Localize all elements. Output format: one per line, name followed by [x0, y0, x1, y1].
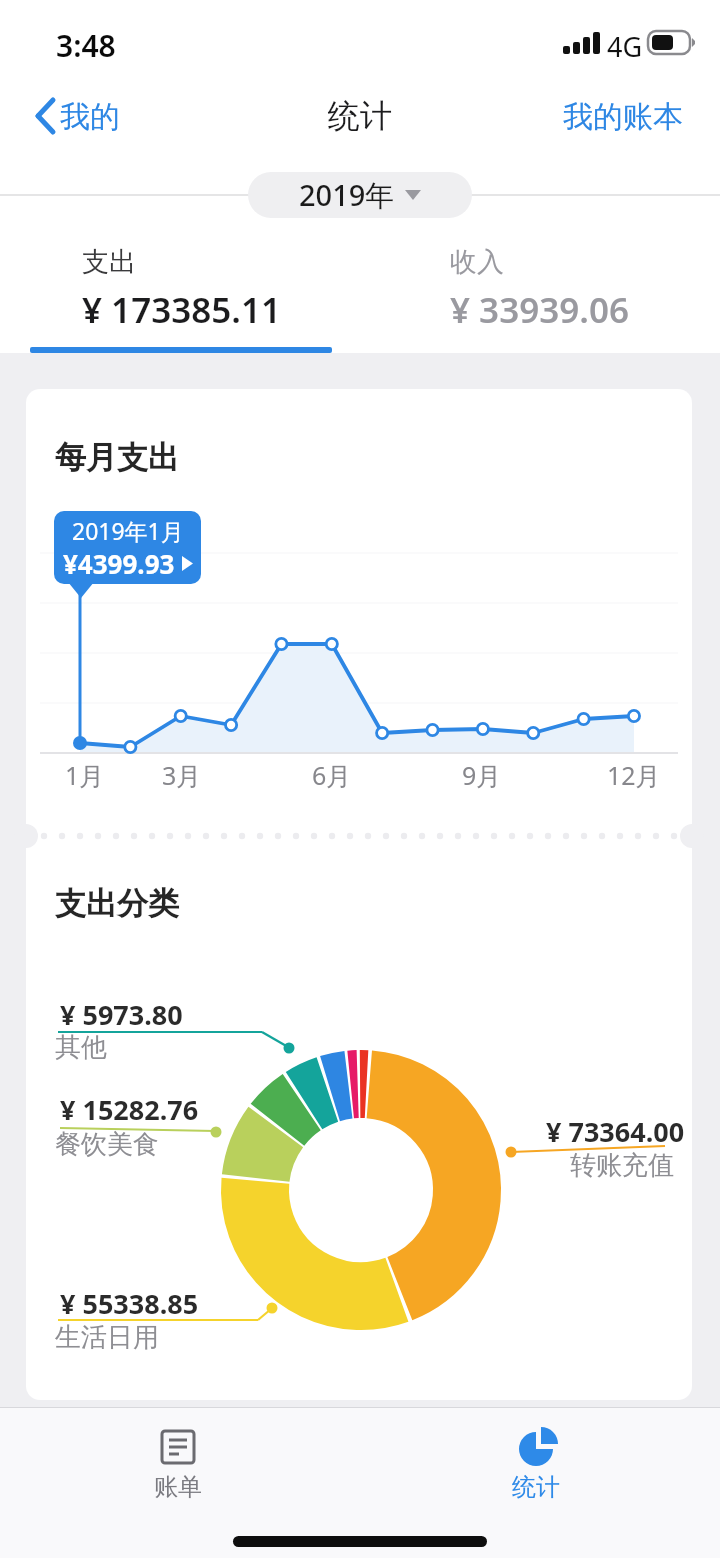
staticText: 支出	[82, 245, 136, 279]
staticText: 3:48	[56, 25, 116, 66]
button[interactable]: 2019年	[248, 172, 472, 218]
staticText: 4G	[607, 28, 643, 65]
staticText: 转账充值	[570, 1149, 674, 1182]
staticText: 统计	[328, 96, 392, 136]
staticText: 生活日用	[55, 1321, 159, 1354]
staticText: 支出分类	[55, 884, 179, 923]
staticText: ¥ 15282.76	[60, 1091, 199, 1128]
staticText: 2019年1月	[72, 515, 184, 546]
staticText: ¥ 33939.06	[450, 286, 629, 334]
staticText: 每月支出	[55, 438, 179, 477]
button[interactable]: 我的	[60, 98, 120, 136]
staticText: 其他	[55, 1031, 107, 1064]
button[interactable]: 2019年1月	[54, 511, 201, 584]
staticText: ¥4399.93	[63, 546, 175, 581]
staticText: 统计	[512, 1472, 560, 1502]
staticText: 我的	[60, 98, 120, 136]
staticText: ¥ 55338.85	[60, 1285, 199, 1322]
button[interactable]	[478, 1420, 598, 1510]
staticText: 2019年	[299, 175, 395, 215]
button[interactable]: 收入	[450, 245, 629, 334]
button[interactable]	[118, 1420, 238, 1510]
staticText: 9月	[462, 758, 502, 792]
button[interactable]: 支出	[82, 245, 281, 334]
staticText: 12月	[607, 758, 661, 792]
staticText: 1月	[65, 758, 105, 792]
staticText: 我的账本	[563, 98, 683, 136]
staticText: ¥ 173385.11	[82, 286, 281, 334]
staticText: 餐饮美食	[55, 1128, 159, 1161]
staticText: 3月	[162, 758, 202, 792]
staticText: 账单	[154, 1472, 202, 1502]
button[interactable]: 我的账本	[563, 98, 683, 136]
staticText: ¥ 73364.00	[546, 1113, 685, 1150]
staticText: ¥ 5973.80	[60, 996, 183, 1033]
staticText: 收入	[450, 245, 504, 279]
staticText: 6月	[312, 758, 352, 792]
